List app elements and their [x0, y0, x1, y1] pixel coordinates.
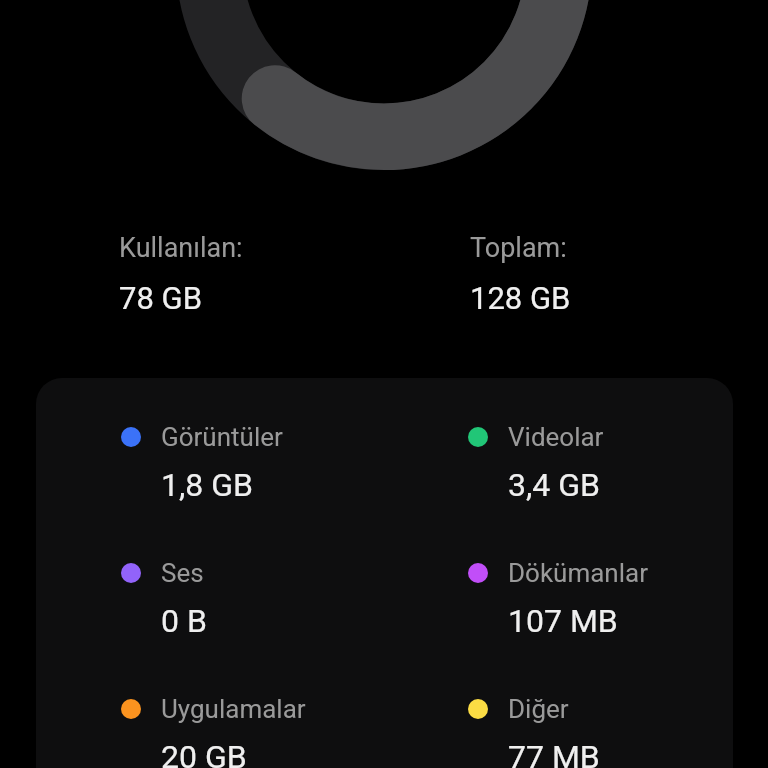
button[interactable]: Uygulamalar	[121, 682, 421, 768]
staticText: Dökümanlar	[508, 558, 648, 588]
button[interactable]: Kullanılan:	[119, 232, 369, 316]
staticText: 78 GB	[119, 280, 202, 316]
button[interactable]: Videolar	[468, 410, 733, 522]
staticText: 1,8 GB	[161, 466, 253, 504]
button[interactable]: Dökümanlar	[468, 546, 733, 658]
other: Depolama kullanımı 78 GB / 128 GB	[176, 0, 592, 174]
staticText: Toplam:	[470, 232, 567, 264]
staticText: 128 GB	[470, 280, 571, 316]
staticText: Kullanılan:	[119, 232, 243, 264]
button[interactable]: Diğer	[468, 682, 733, 768]
staticText: Görüntüler	[161, 422, 283, 452]
staticText: 107 MB	[508, 602, 618, 640]
staticText: Uygulamalar	[161, 694, 306, 724]
button[interactable]: Ses	[121, 546, 421, 658]
staticText: Ses	[161, 558, 204, 588]
staticText: Diğer	[508, 694, 569, 724]
staticText: Videolar	[508, 422, 604, 452]
button[interactable]: Toplam:	[470, 232, 720, 316]
staticText: 0 B	[161, 602, 207, 640]
staticText: 77 MB	[508, 738, 600, 768]
staticText: 3,4 GB	[508, 466, 600, 504]
button[interactable]: Görüntüler	[121, 410, 421, 522]
staticText: 20 GB	[161, 738, 247, 768]
